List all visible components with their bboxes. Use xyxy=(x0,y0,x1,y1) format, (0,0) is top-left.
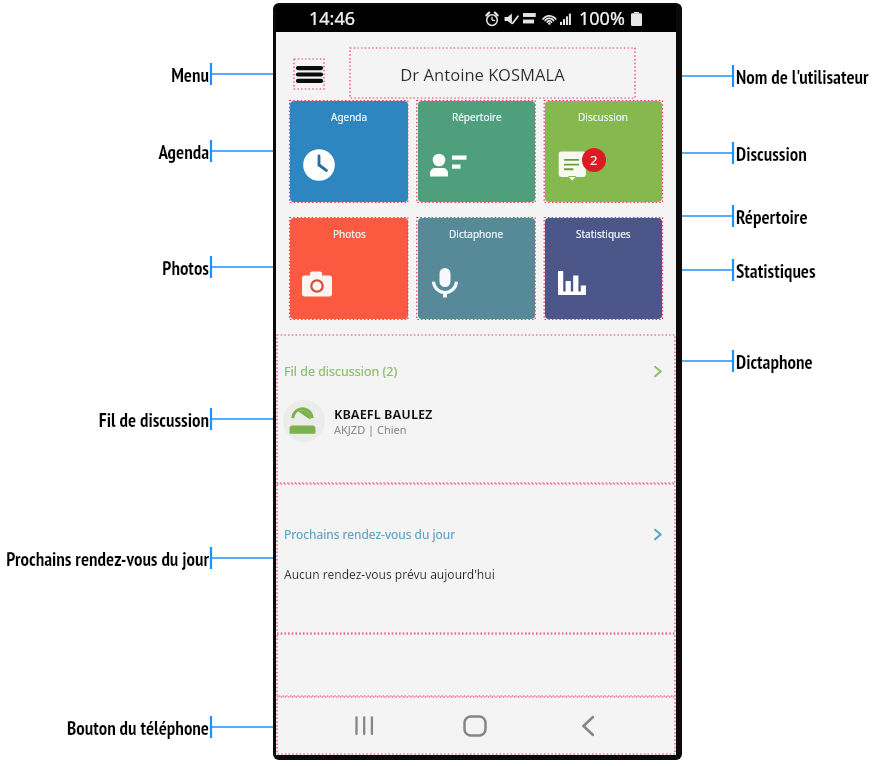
button[interactable]: Menu xyxy=(294,59,324,89)
staticText: 100% xyxy=(579,6,625,31)
staticText: 2 xyxy=(590,151,598,169)
button[interactable]: Répertoire xyxy=(418,101,535,202)
staticText: Prochains rendez-vous du jour xyxy=(284,526,456,542)
staticText: Discussion xyxy=(736,142,807,167)
staticText: KBAEFL BAULEZ xyxy=(334,405,433,422)
button[interactable]: Back xyxy=(542,699,630,753)
button[interactable]: Fil de discussion (2) xyxy=(276,356,676,386)
staticText: Agenda xyxy=(331,110,368,124)
staticText: Prochains rendez-vous du jour xyxy=(0,547,209,572)
staticText: Statistiques xyxy=(576,227,631,241)
staticText: Dr Antoine KOSMALA xyxy=(400,63,565,85)
staticText: Agenda xyxy=(0,140,209,165)
staticText: Aucun rendez-vous prévu aujourd'hui xyxy=(284,566,495,582)
staticText: Photos xyxy=(333,227,366,241)
button[interactable]: KBAEFL BAULEZ xyxy=(276,397,676,445)
button[interactable]: Discussion xyxy=(545,101,662,202)
staticText: Discussion xyxy=(578,110,629,124)
staticText: Répertoire xyxy=(736,205,808,230)
staticText: Nom de l'utilisateur xyxy=(736,65,869,90)
staticText: Répertoire xyxy=(452,110,502,124)
button[interactable]: Dictaphone xyxy=(418,218,535,319)
staticText: Statistiques xyxy=(736,259,816,284)
button[interactable]: Home xyxy=(431,699,519,753)
staticText: Fil de discussion (2) xyxy=(284,363,398,380)
staticText: Fil de discussion xyxy=(0,408,209,433)
button[interactable]: Prochains rendez-vous du jour xyxy=(276,519,676,549)
staticText: Bouton du téléphone xyxy=(0,716,209,741)
staticText: Photos xyxy=(0,256,209,281)
button[interactable]: Agenda xyxy=(290,101,408,202)
staticText: Menu xyxy=(0,63,209,88)
staticText: 14:46 xyxy=(309,6,356,31)
staticText: Dictaphone xyxy=(449,227,504,241)
staticText: Dictaphone xyxy=(736,350,813,375)
button[interactable]: Statistiques xyxy=(545,218,662,319)
button[interactable]: Photos xyxy=(290,218,408,319)
button[interactable]: Recents xyxy=(324,699,412,753)
button[interactable]: Dr Antoine KOSMALA xyxy=(350,48,635,98)
staticText: AKJZD | Chien xyxy=(334,422,407,437)
